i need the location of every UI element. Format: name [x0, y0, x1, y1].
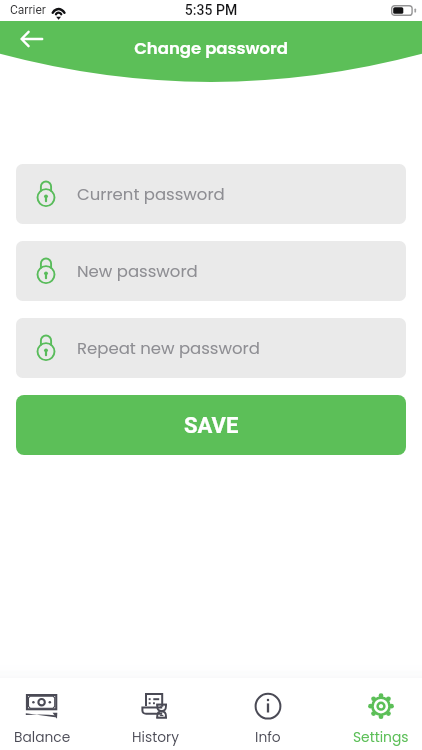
- staticText: Info: [255, 728, 281, 747]
- staticText: Repeat new password: [77, 337, 260, 360]
- staticText: Carrier: [10, 3, 46, 17]
- button[interactable]: New password: [16, 241, 406, 301]
- staticText: New password: [77, 260, 198, 283]
- staticText: History: [132, 728, 179, 747]
- staticText: 5:35 PM: [0, 2, 422, 18]
- button[interactable]: Back: [8, 21, 46, 57]
- staticText: Change password: [0, 37, 422, 60]
- staticText: Current password: [77, 183, 225, 206]
- staticText: Settings: [353, 728, 409, 747]
- button[interactable]: History: [109, 678, 201, 750]
- button[interactable]: Current password: [16, 164, 406, 224]
- button[interactable]: Info: [222, 678, 314, 750]
- staticText: Balance: [14, 728, 71, 747]
- button[interactable]: SAVE: [16, 395, 406, 455]
- button[interactable]: Settings: [335, 678, 422, 750]
- button[interactable]: Repeat new password: [16, 318, 406, 378]
- staticText: SAVE: [184, 413, 239, 439]
- button[interactable]: Balance: [0, 678, 88, 750]
